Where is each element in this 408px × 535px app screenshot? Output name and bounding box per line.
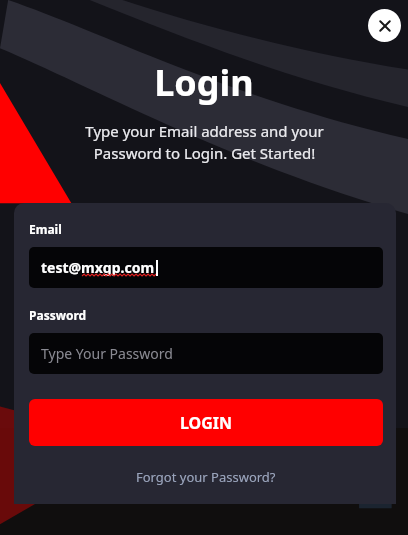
staticText: Forgot your Password? [136,468,276,486]
button[interactable]: Type Your Password [29,333,383,374]
button[interactable]: LOGIN [29,399,383,446]
button[interactable]: Forgot your Password? [130,462,282,492]
staticText: Email [29,221,62,237]
staticText: Password [29,307,87,323]
staticText: LOGIN [180,412,233,434]
button[interactable]: test@mxgp.com [29,247,383,288]
staticText: Type your Email address and your Passwor… [85,121,324,164]
staticText: test@mxgp.com [41,258,155,277]
button[interactable]: Close [368,9,401,42]
staticText: Type Your Password [41,344,173,363]
staticText: Login [154,58,254,107]
